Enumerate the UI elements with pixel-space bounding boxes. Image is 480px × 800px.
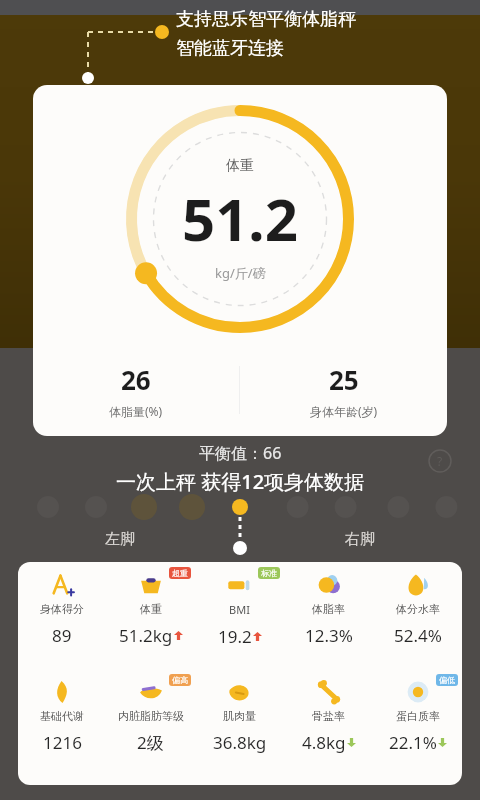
staticText: 2级 bbox=[137, 731, 164, 754]
button[interactable]: 骨盐率 bbox=[284, 677, 373, 785]
staticText: 51.2kg bbox=[119, 624, 173, 647]
staticText: 智能蓝牙连接 bbox=[176, 37, 284, 60]
staticText: ? bbox=[437, 453, 443, 469]
staticText: 平衡值：66 bbox=[199, 442, 282, 464]
staticText: 体重 bbox=[140, 602, 162, 616]
button[interactable]: 25 bbox=[240, 362, 447, 419]
staticText: 偏高 bbox=[172, 675, 188, 685]
staticText: 身体得分 bbox=[40, 602, 84, 616]
button[interactable]: 基础代谢 bbox=[18, 677, 106, 785]
staticText: 89 bbox=[52, 624, 72, 647]
staticText: 一次上秤 获得12项身体数据 bbox=[116, 468, 365, 495]
staticText: 1216 bbox=[43, 731, 82, 754]
button[interactable]: 超重 bbox=[106, 570, 195, 677]
staticText: 基础代谢 bbox=[40, 709, 84, 723]
staticText: 26 bbox=[121, 362, 151, 397]
button[interactable]: 体分水率 bbox=[373, 570, 462, 677]
staticText: 偏低 bbox=[439, 675, 455, 685]
staticText: 内脏脂肪等级 bbox=[118, 709, 184, 723]
staticText: BMI bbox=[229, 602, 250, 617]
staticText: 左脚 bbox=[105, 530, 135, 549]
staticText: 36.8kg bbox=[213, 731, 267, 754]
staticText: kg/斤/磅 bbox=[215, 264, 266, 282]
staticText: 右脚 bbox=[345, 530, 375, 549]
button[interactable]: 肌肉量 bbox=[195, 677, 284, 785]
button[interactable]: 帮助 bbox=[428, 449, 452, 473]
staticText: 蛋白质率 bbox=[396, 709, 440, 723]
staticText: 支持思乐智平衡体脂秤 bbox=[176, 8, 356, 31]
staticText: 体脂率 bbox=[312, 602, 345, 616]
staticText: 52.4% bbox=[394, 624, 442, 647]
button[interactable]: 偏低 bbox=[373, 677, 462, 785]
button[interactable]: 标准 bbox=[195, 570, 284, 677]
staticText: 25 bbox=[329, 362, 359, 397]
button[interactable]: 偏高 bbox=[106, 677, 195, 785]
staticText: 19.2 bbox=[218, 625, 252, 648]
button[interactable]: 身体得分 bbox=[18, 570, 106, 677]
staticText: 4.8kg bbox=[302, 731, 346, 754]
staticText: 体重 bbox=[226, 157, 254, 175]
button[interactable]: 体重 bbox=[33, 85, 447, 436]
button[interactable]: 体脂率 bbox=[284, 570, 373, 677]
staticText: 12.3% bbox=[305, 624, 353, 647]
staticText: 体分水率 bbox=[396, 602, 440, 616]
staticText: 肌肉量 bbox=[223, 709, 256, 723]
staticText: 22.1% bbox=[389, 731, 437, 754]
staticText: 骨盐率 bbox=[312, 709, 345, 723]
staticText: 标准 bbox=[261, 568, 277, 578]
staticText: 体脂量(%) bbox=[109, 403, 163, 419]
button[interactable]: 26 bbox=[33, 362, 239, 419]
staticText: 超重 bbox=[172, 568, 188, 578]
staticText: 51.2 bbox=[182, 179, 298, 258]
staticText: 身体年龄(岁) bbox=[310, 403, 378, 419]
